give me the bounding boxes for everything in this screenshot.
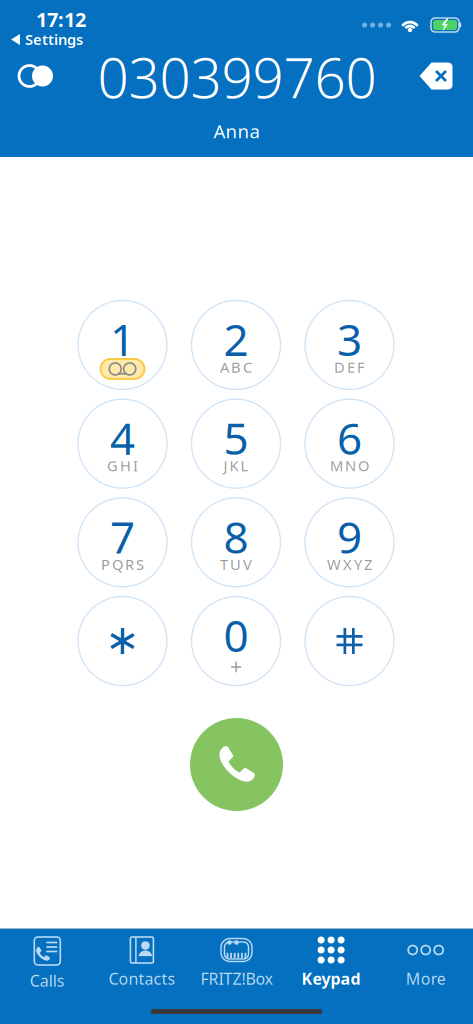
button[interactable]: Calls bbox=[0, 936, 95, 998]
staticText: 8 bbox=[223, 507, 248, 565]
staticText: 2 bbox=[223, 310, 248, 368]
button[interactable]: 3 bbox=[305, 300, 394, 389]
button[interactable]: Call bbox=[190, 718, 283, 811]
staticText: G H I bbox=[107, 456, 138, 475]
staticText: D E F bbox=[334, 357, 365, 377]
button[interactable]: 1 bbox=[78, 300, 167, 389]
button[interactable]: More bbox=[378, 936, 473, 998]
button[interactable]: 4 bbox=[78, 399, 167, 488]
staticText: 5 bbox=[223, 408, 248, 467]
button[interactable]: 6 bbox=[305, 399, 394, 488]
staticText: + bbox=[230, 652, 242, 680]
staticText: 9 bbox=[337, 507, 362, 565]
button[interactable]: Delete bbox=[412, 56, 460, 96]
staticText: M N O bbox=[330, 456, 369, 475]
button[interactable]: Pound bbox=[305, 596, 394, 685]
staticText: Calls bbox=[30, 970, 65, 991]
button[interactable]: Keypad bbox=[284, 936, 378, 998]
staticText: 7 bbox=[110, 507, 135, 565]
staticText: W X Y Z bbox=[327, 555, 372, 574]
staticText: Settings bbox=[25, 29, 83, 49]
button[interactable]: 8 bbox=[191, 498, 280, 587]
button[interactable]: Star bbox=[78, 596, 167, 685]
button[interactable]: FRITZ!Box bbox=[189, 936, 284, 998]
staticText: 1 bbox=[110, 310, 135, 368]
button[interactable]: Contacts bbox=[95, 936, 189, 998]
staticText: Keypad bbox=[302, 968, 361, 989]
staticText: 0 bbox=[223, 606, 248, 664]
staticText: J K L bbox=[223, 456, 248, 475]
staticText: More bbox=[406, 968, 446, 989]
staticText: 6 bbox=[337, 408, 362, 467]
staticText: Anna bbox=[213, 119, 259, 143]
staticText: 030399760 bbox=[97, 41, 376, 113]
staticText: Contacts bbox=[108, 968, 175, 989]
staticText: FRITZ!Box bbox=[200, 968, 272, 989]
staticText: A B C bbox=[220, 357, 252, 377]
button[interactable]: 5 bbox=[191, 399, 280, 488]
staticText: 17:12 bbox=[36, 6, 86, 33]
button[interactable]: 9 bbox=[305, 498, 394, 587]
button[interactable]: Select line bbox=[10, 56, 62, 96]
button[interactable]: 2 bbox=[191, 300, 280, 389]
staticText: 4 bbox=[110, 408, 135, 467]
button[interactable]: 7 bbox=[78, 498, 167, 587]
staticText: T U V bbox=[220, 555, 252, 574]
button[interactable]: 0 bbox=[191, 596, 280, 685]
staticText: P Q R S bbox=[101, 555, 144, 574]
staticText: 3 bbox=[337, 310, 362, 368]
